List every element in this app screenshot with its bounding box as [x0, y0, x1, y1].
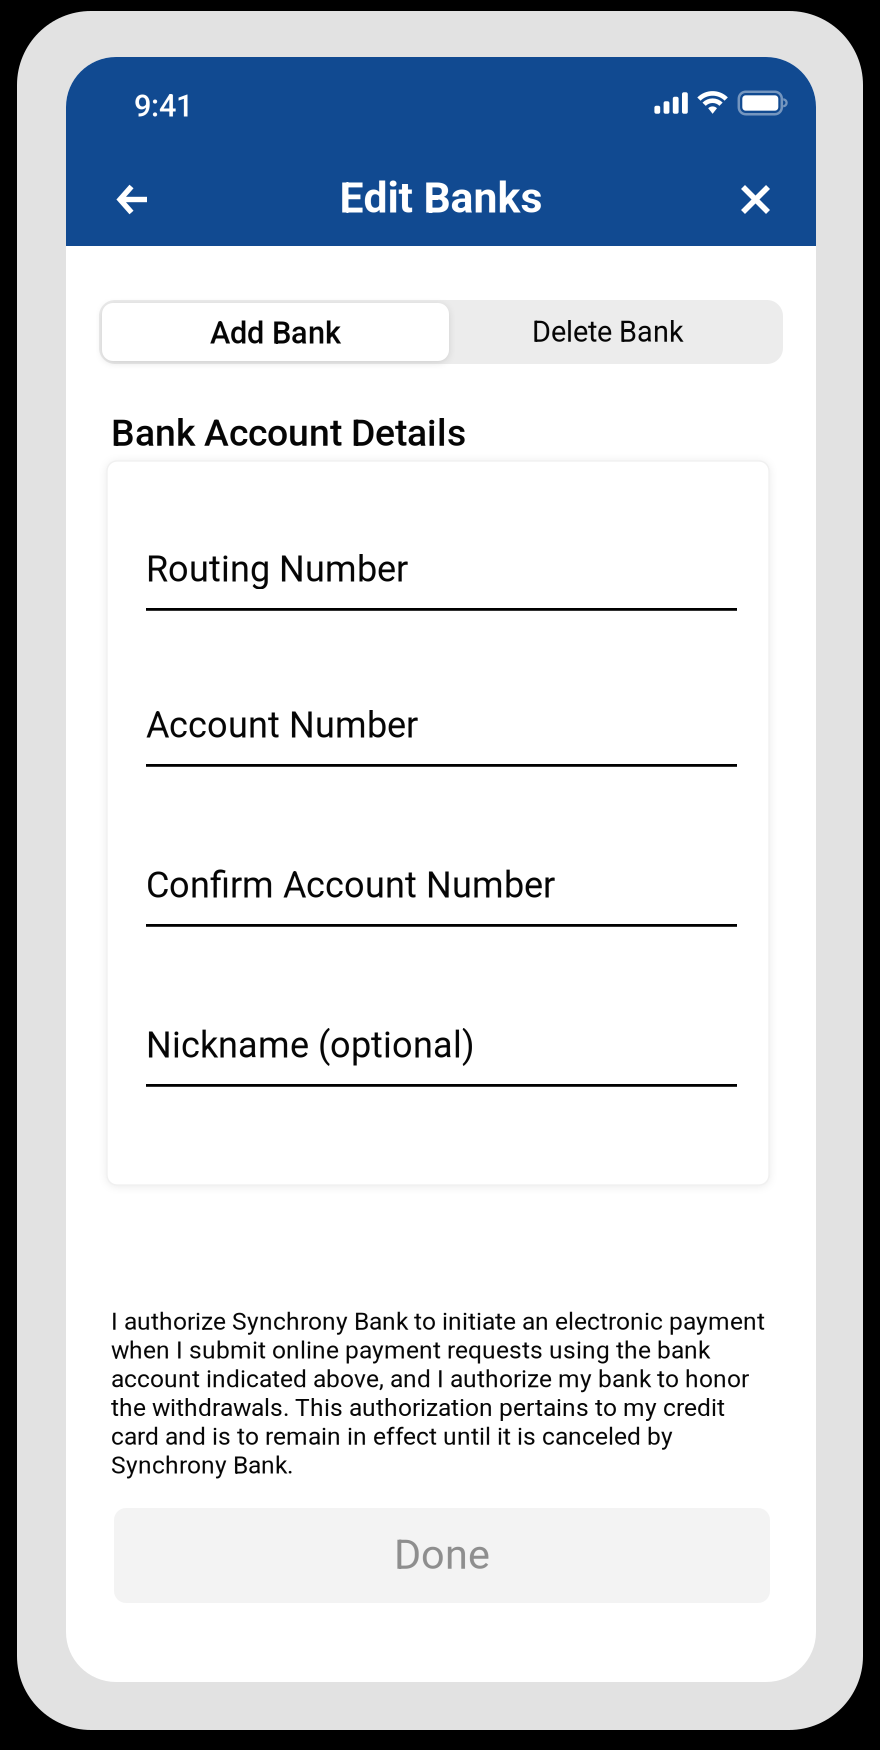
- button[interactable]: Close: [717, 161, 793, 237]
- button[interactable]: Add Bank: [102, 300, 449, 364]
- staticText: Add Bank: [210, 315, 341, 351]
- staticText: 9:41: [134, 88, 193, 124]
- staticText: Done: [394, 1530, 490, 1579]
- button[interactable]: Done: [114, 1508, 770, 1603]
- button[interactable]: Delete Bank: [449, 300, 767, 364]
- staticText: Confirm Account Number: [146, 864, 555, 906]
- staticText: Edit Banks: [339, 173, 542, 223]
- staticText: Routing Number: [146, 548, 408, 590]
- staticText: Account Number: [146, 704, 418, 746]
- staticText: Bank Account Details: [111, 411, 466, 455]
- staticText: I authorize Synchrony Bank to initiate a…: [111, 1307, 765, 1479]
- button[interactable]: Back: [94, 161, 170, 237]
- staticText: Nickname (optional): [146, 1024, 475, 1066]
- staticText: Delete Bank: [532, 315, 684, 349]
